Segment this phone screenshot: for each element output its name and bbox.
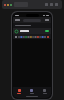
button[interactable]: Menu: [15, 19, 20, 21]
button[interactable]: Home: [13, 87, 25, 95]
button[interactable]: [15, 34, 49, 39]
button[interactable]: Profile: [38, 87, 51, 95]
button[interactable]: [23, 19, 41, 22]
button[interactable]: More options: [45, 19, 49, 21]
button[interactable]: [45, 30, 49, 32]
button[interactable]: [15, 28, 49, 34]
button[interactable]: Library: [25, 87, 38, 95]
